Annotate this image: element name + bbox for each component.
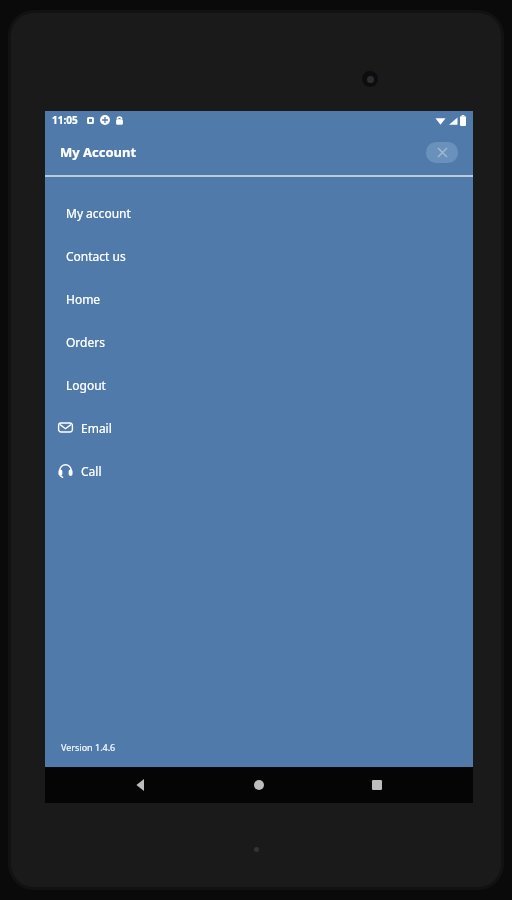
button[interactable]: Home [45,277,473,320]
staticText: My account [66,205,131,221]
staticText: 11:05 [52,113,78,127]
button[interactable]: Close [426,142,458,163]
button[interactable]: Logout [45,363,473,406]
button[interactable]: Contact us [45,234,473,277]
button[interactable]: Back [119,767,163,803]
button[interactable]: Call [45,449,473,492]
button[interactable]: Home [237,767,281,803]
staticText: Email [81,420,112,436]
staticText: Logout [66,377,106,393]
staticText: Version 1.4.6 [61,741,116,753]
staticText: Orders [66,334,105,350]
staticText: Contact us [66,248,126,264]
button[interactable]: My account [45,191,473,234]
staticText: My Account [60,143,137,161]
staticText: Home [66,291,101,307]
button[interactable]: Recent apps [355,767,399,803]
staticText: Call [81,463,102,479]
button[interactable]: Orders [45,320,473,363]
button[interactable]: Email [45,406,473,449]
